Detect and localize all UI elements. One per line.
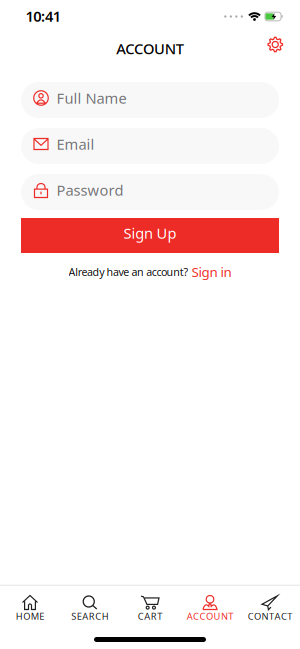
button[interactable]: ACCOUNT: [180, 590, 240, 630]
staticText: Password: [56, 180, 123, 200]
button[interactable]: [268, 37, 282, 52]
staticText: SEARCH: [71, 610, 109, 622]
staticText: Email: [56, 134, 94, 154]
button[interactable]: CONTACT: [240, 590, 300, 630]
staticText: ACCOUNT: [187, 610, 233, 622]
staticText: ACCOUNT: [116, 39, 184, 58]
button[interactable]: Full Name: [21, 82, 279, 118]
staticText: Already have an account?: [69, 265, 188, 279]
button[interactable]: SEARCH: [60, 590, 120, 630]
button[interactable]: Email: [21, 128, 279, 164]
button[interactable]: Password: [21, 174, 279, 210]
staticText: Full Name: [56, 88, 126, 108]
staticText: HOME: [16, 610, 44, 622]
button[interactable]: CART: [120, 590, 180, 630]
button[interactable]: HOME: [0, 590, 60, 630]
staticText: Sign in: [191, 263, 231, 281]
button[interactable]: Already have an account?: [69, 263, 231, 281]
staticText: CONTACT: [248, 610, 292, 622]
button[interactable]: Sign Up: [21, 218, 279, 253]
staticText: Sign Up: [124, 223, 176, 243]
staticText: CART: [138, 610, 162, 622]
staticText: 10:41: [25, 6, 61, 26]
